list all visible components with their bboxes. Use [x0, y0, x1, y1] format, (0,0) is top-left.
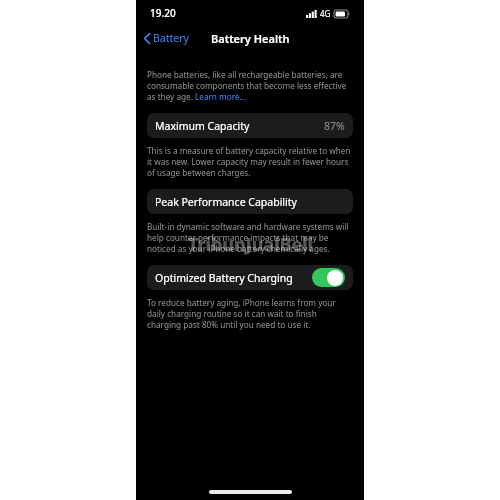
staticText: 19.20: [150, 6, 176, 20]
button[interactable]: Optimized Battery Charging: [147, 265, 353, 290]
staticText: To reduce battery aging, iPhone learns f…: [147, 297, 353, 330]
staticText: TribunJualBeli: [188, 232, 313, 257]
staticText: 4G: [320, 8, 331, 19]
staticText: Battery Health: [211, 31, 290, 46]
staticText: Optimized Battery Charging: [155, 271, 293, 285]
button[interactable]: Maximum Capacity: [147, 113, 353, 138]
button[interactable]: Battery: [136, 28, 195, 48]
staticText: This is a measure of battery capacity re…: [147, 145, 353, 178]
staticText: Maximum Capacity: [155, 119, 250, 133]
button[interactable]: Optimized Battery Charging toggle, on: [312, 268, 345, 287]
staticText: 87%: [324, 119, 345, 133]
staticText: Battery: [153, 31, 189, 45]
staticText: Built-in dynamic software and hardware s…: [147, 221, 353, 254]
button[interactable]: Peak Performance Capability: [147, 189, 353, 214]
staticText: Peak Performance Capability: [155, 195, 297, 209]
staticText: Phone batteries, like all rechargeable b…: [147, 69, 353, 102]
